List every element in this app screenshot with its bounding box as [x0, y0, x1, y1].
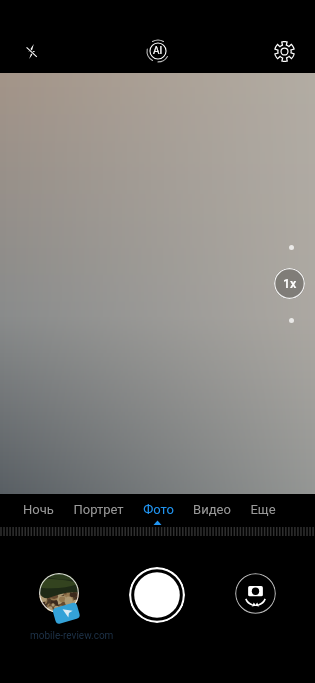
staticText: mobile-review.com: [30, 630, 114, 642]
button[interactable]: Фото: [128, 497, 188, 521]
button[interactable]: Zoom 1x: [274, 268, 305, 299]
staticText: Видео: [193, 502, 231, 517]
staticText: 1x: [283, 276, 297, 291]
button[interactable]: AI scene detection: [140, 33, 176, 69]
button[interactable]: Switch camera: [235, 573, 276, 614]
button[interactable]: Shutter: [129, 567, 185, 623]
staticText: Ночь: [23, 502, 54, 517]
staticText: Фото: [143, 502, 174, 517]
button[interactable]: Settings: [266, 33, 302, 69]
button[interactable]: Ночь: [8, 497, 68, 521]
button[interactable]: Видео: [182, 497, 242, 521]
button[interactable]: Flash off: [13, 33, 49, 69]
staticText: AI: [153, 45, 163, 57]
button[interactable]: Gallery: [39, 573, 79, 613]
staticText: Портрет: [73, 502, 124, 517]
button[interactable]: Портрет: [68, 497, 128, 521]
staticText: Еще: [250, 502, 276, 517]
button[interactable]: Еще: [233, 497, 293, 521]
